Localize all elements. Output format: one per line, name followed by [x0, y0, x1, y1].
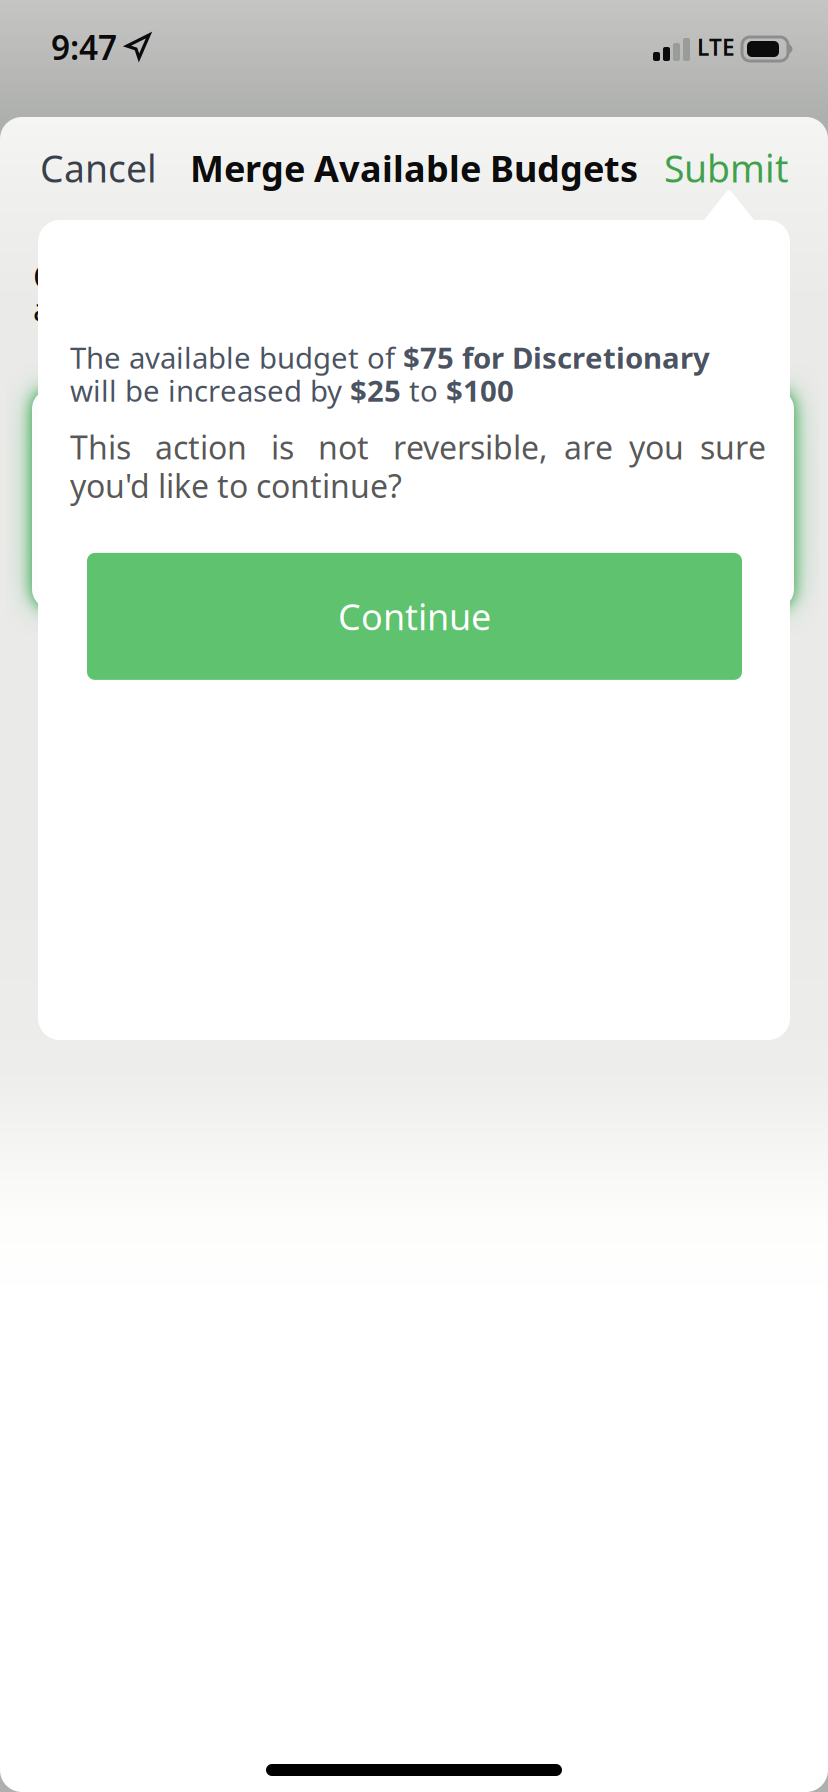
staticText: 9:47	[51, 25, 117, 69]
staticText: The available budget of $75 for Discreti…	[70, 338, 710, 377]
staticText: available balance of this one.	[33, 287, 465, 330]
staticText: Continue	[338, 592, 491, 640]
button[interactable]: Continue	[87, 553, 742, 680]
staticText: you'd like to continue?	[70, 464, 402, 507]
staticText: Submit	[664, 143, 788, 193]
staticText: LTE	[697, 32, 735, 62]
staticText: Cancel	[40, 143, 157, 193]
staticText: will be increased by $25 to $100	[70, 371, 514, 410]
button[interactable]: Cancel	[0, 117, 197, 219]
staticText: This action is not reversible, are you s…	[70, 426, 766, 468]
staticText: Choose the budgets you'd like to merge i…	[33, 255, 753, 297]
staticText: Merge Available Budgets	[190, 144, 638, 192]
button[interactable]: Submit	[624, 117, 828, 219]
